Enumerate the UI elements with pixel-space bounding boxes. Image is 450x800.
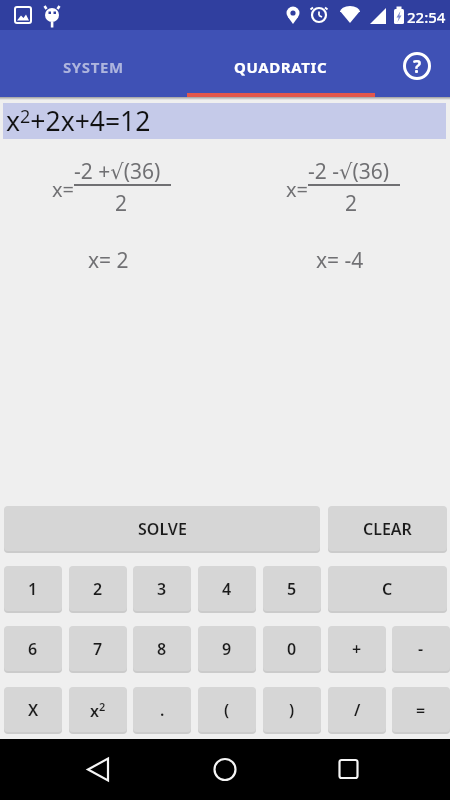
staticText: + [352, 638, 362, 660]
staticText: x2+2x+4=12 [6, 103, 151, 139]
staticText: 1 [28, 578, 38, 600]
staticText: - [418, 638, 424, 660]
button[interactable] [327, 749, 369, 791]
staticText: 5 [287, 578, 297, 600]
staticText: SYSTEM [63, 57, 124, 77]
staticText: = [416, 699, 426, 721]
staticText: x= -4 [316, 246, 364, 275]
staticText: x= [52, 176, 75, 203]
staticText: 8 [157, 638, 167, 660]
button[interactable]: + [328, 626, 386, 671]
staticText: ) [289, 699, 295, 721]
button[interactable] [204, 749, 246, 791]
staticText: QUADRATIC [234, 57, 328, 77]
button[interactable]: - [392, 626, 450, 671]
button[interactable]: X [4, 687, 62, 732]
staticText: . [160, 699, 165, 721]
staticText: x2 [90, 699, 106, 721]
button[interactable]: . [133, 687, 191, 732]
button[interactable]: x2+2x+4=12 [3, 103, 446, 139]
button[interactable]: SOLVE [4, 506, 320, 551]
button[interactable]: 3 [133, 566, 191, 611]
button[interactable]: 1 [4, 566, 62, 611]
staticText: 7 [93, 638, 103, 660]
staticText: 22:54 [407, 7, 446, 27]
staticText: 2 [115, 189, 128, 218]
button[interactable]: 5 [263, 566, 321, 611]
button[interactable]: 8 [133, 626, 191, 671]
staticText: X [28, 699, 39, 721]
button[interactable]: 7 [69, 626, 127, 671]
staticText: x= [286, 176, 309, 203]
button[interactable] [78, 749, 120, 791]
button[interactable]: QUADRATIC [187, 30, 375, 97]
button[interactable]: SYSTEM [0, 30, 187, 97]
button[interactable]: ) [263, 687, 321, 732]
button[interactable]: 6 [4, 626, 62, 671]
staticText: C [382, 578, 393, 600]
button[interactable]: ? [400, 49, 434, 83]
staticText: 4 [222, 578, 232, 600]
staticText: x= 2 [88, 246, 129, 275]
button[interactable]: 9 [198, 626, 256, 671]
staticText: -2 -√(36) [308, 157, 390, 186]
staticText: 9 [222, 638, 232, 660]
staticText: / [354, 699, 361, 721]
staticText: CLEAR [363, 518, 412, 540]
staticText: 2 [93, 578, 103, 600]
staticText: 6 [28, 638, 38, 660]
button[interactable]: x2 [69, 687, 127, 732]
button[interactable]: = [392, 687, 450, 732]
button[interactable]: 4 [198, 566, 256, 611]
staticText: -2 +√(36) [74, 157, 161, 186]
staticText: 0 [287, 638, 297, 660]
staticText: ? [413, 55, 422, 78]
button[interactable]: CLEAR [328, 506, 447, 551]
button[interactable]: C [328, 566, 447, 611]
staticText: SOLVE [138, 518, 187, 540]
staticText: ( [224, 699, 230, 721]
button[interactable]: 2 [69, 566, 127, 611]
staticText: 3 [157, 578, 167, 600]
button[interactable]: / [328, 687, 386, 732]
button[interactable]: 0 [263, 626, 321, 671]
staticText: 2 [345, 189, 358, 218]
button[interactable]: ( [198, 687, 256, 732]
